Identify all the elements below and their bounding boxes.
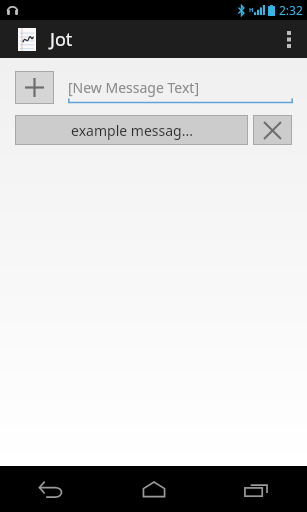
staticText: H: [249, 6, 254, 14]
button[interactable]: Recent apps: [205, 466, 307, 512]
button[interactable]: Back: [0, 466, 103, 512]
button[interactable]: Home: [103, 466, 205, 512]
button[interactable]: Add message: [16, 72, 53, 103]
button[interactable]: [New Message Text]: [68, 71, 293, 104]
button[interactable]: example messag...: [16, 116, 247, 144]
staticText: 2:32: [279, 2, 303, 18]
staticText: Jot: [50, 27, 73, 52]
button[interactable]: Delete message: [254, 116, 291, 144]
button[interactable]: More options: [270, 20, 307, 58]
staticText: [New Message Text]: [68, 78, 199, 97]
staticText: example messag...: [71, 121, 193, 140]
